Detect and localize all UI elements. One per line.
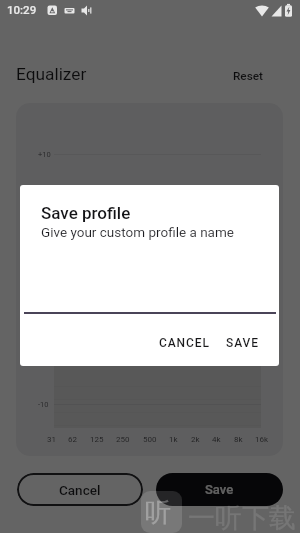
staticText: Save	[205, 482, 234, 497]
staticText: 62	[68, 435, 77, 444]
button[interactable]: Save	[156, 473, 283, 506]
staticText: 16k	[255, 435, 269, 444]
staticText: 125	[90, 435, 104, 444]
staticText: 31	[47, 435, 56, 444]
staticText: -10	[38, 400, 49, 409]
button[interactable]: CANCEL	[154, 331, 215, 355]
staticText: 听	[145, 496, 171, 529]
staticText: 1k	[169, 435, 178, 444]
staticText: Give your custom profile a name	[41, 224, 234, 240]
staticText: 2k	[191, 435, 200, 444]
staticText: 4k	[212, 435, 221, 444]
other: Status icons	[0, 0, 300, 22]
button[interactable]: Cancel	[17, 473, 143, 506]
staticText: +10	[38, 150, 51, 159]
button[interactable]: Reset	[227, 64, 270, 88]
staticText: 8k	[234, 435, 243, 444]
staticText: 250	[116, 435, 130, 444]
staticText: SAVE	[226, 336, 259, 350]
staticText: Equalizer	[16, 64, 87, 84]
staticText: CANCEL	[159, 336, 210, 350]
button[interactable]: SAVE	[221, 331, 264, 355]
staticText: Reset	[233, 69, 264, 83]
staticText: 10:29	[7, 3, 37, 16]
staticText: Cancel	[59, 482, 101, 498]
staticText: 一听下载	[188, 501, 296, 533]
staticText: Save profile	[41, 203, 131, 223]
staticText: 500	[143, 435, 157, 444]
